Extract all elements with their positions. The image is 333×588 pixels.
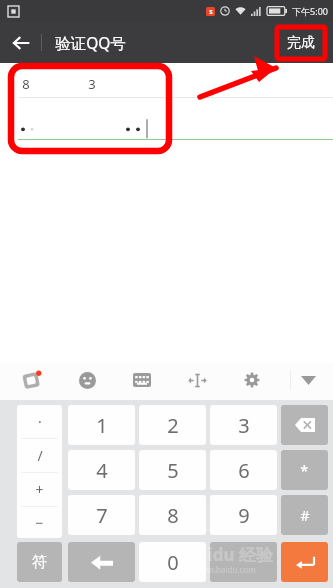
button[interactable]: 回车 <box>281 542 328 582</box>
staticText: 0 <box>167 549 179 576</box>
button[interactable] <box>210 542 277 582</box>
staticText: 2 <box>167 412 179 439</box>
button[interactable]: 输入法 <box>14 363 48 397</box>
staticText: 9 <box>238 502 250 529</box>
button[interactable]: 6 <box>210 450 277 490</box>
button[interactable]: 符 <box>17 542 62 582</box>
button[interactable]: 3 <box>210 405 277 445</box>
button[interactable]: * <box>281 450 328 490</box>
staticText: S <box>209 8 213 16</box>
staticText: + <box>35 480 44 499</box>
button[interactable]: 9 <box>210 495 277 535</box>
staticText: 6 <box>238 457 250 484</box>
staticText: 5 <box>167 457 179 484</box>
button[interactable]: 0 <box>139 542 206 582</box>
button[interactable]: 2 <box>139 405 206 445</box>
button[interactable]: 8 <box>0 71 333 97</box>
button[interactable]: 表情 <box>70 363 104 397</box>
staticText: * <box>300 460 309 480</box>
staticText: 完成 <box>287 34 315 52</box>
staticText: 8 <box>167 502 179 529</box>
button[interactable]: 返回 <box>0 22 41 63</box>
button[interactable]: 7 <box>68 495 135 535</box>
button[interactable]: 8 <box>139 495 206 535</box>
button[interactable]: 设置 <box>235 363 269 397</box>
staticText: − <box>35 513 44 532</box>
staticText: 3 <box>238 412 250 439</box>
button[interactable]: 移动光标 <box>180 363 214 397</box>
staticText: 8 <box>22 75 30 93</box>
staticText: 4 <box>96 457 108 484</box>
button[interactable]: 5 <box>139 450 206 490</box>
button[interactable]: / <box>17 439 62 472</box>
staticText: / <box>37 446 43 465</box>
button[interactable]: − <box>17 507 62 538</box>
staticText: # <box>300 506 310 525</box>
button[interactable]: 删除 <box>281 405 328 445</box>
button[interactable]: · <box>17 405 62 438</box>
staticText: 1 <box>96 412 108 439</box>
staticText: · <box>38 412 42 431</box>
staticText: Baidu 经验 <box>186 543 273 566</box>
button[interactable]: 收起键盘 <box>291 363 325 397</box>
button[interactable] <box>0 117 333 139</box>
staticText: 验证QQ号 <box>55 32 126 53</box>
staticText: 下午5:00 <box>292 5 328 17</box>
staticText: jingyan.baidu.com <box>186 564 256 575</box>
staticText: 7 <box>96 502 108 529</box>
button[interactable]: 返回 <box>68 542 135 582</box>
staticText: 3 <box>88 75 96 93</box>
button[interactable]: 1 <box>68 405 135 445</box>
staticText: 符 <box>32 553 47 572</box>
button[interactable]: + <box>17 473 62 506</box>
button[interactable]: 4 <box>68 450 135 490</box>
button[interactable]: # <box>281 495 328 535</box>
button[interactable]: 键盘 <box>125 363 159 397</box>
button[interactable]: 完成 <box>281 31 321 55</box>
